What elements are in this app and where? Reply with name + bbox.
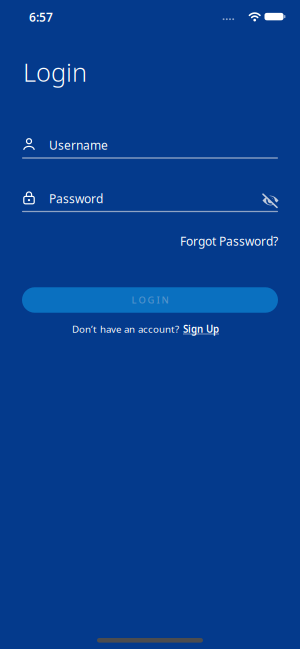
staticText: Don’t have an account? (72, 322, 179, 336)
staticText: Sign Up (183, 322, 219, 336)
staticText: L O G I N (131, 294, 168, 306)
button[interactable]: L O G I N (22, 287, 278, 313)
staticText: Password (49, 190, 103, 206)
button[interactable]: Show password (262, 194, 300, 207)
staticText: Login (23, 55, 87, 89)
staticText: Username (49, 137, 108, 153)
button[interactable]: Sign Up (183, 322, 219, 336)
button[interactable]: Forgot Password? (180, 233, 278, 249)
staticText: 6:57 (29, 9, 53, 25)
staticText: Forgot Password? (180, 233, 278, 249)
